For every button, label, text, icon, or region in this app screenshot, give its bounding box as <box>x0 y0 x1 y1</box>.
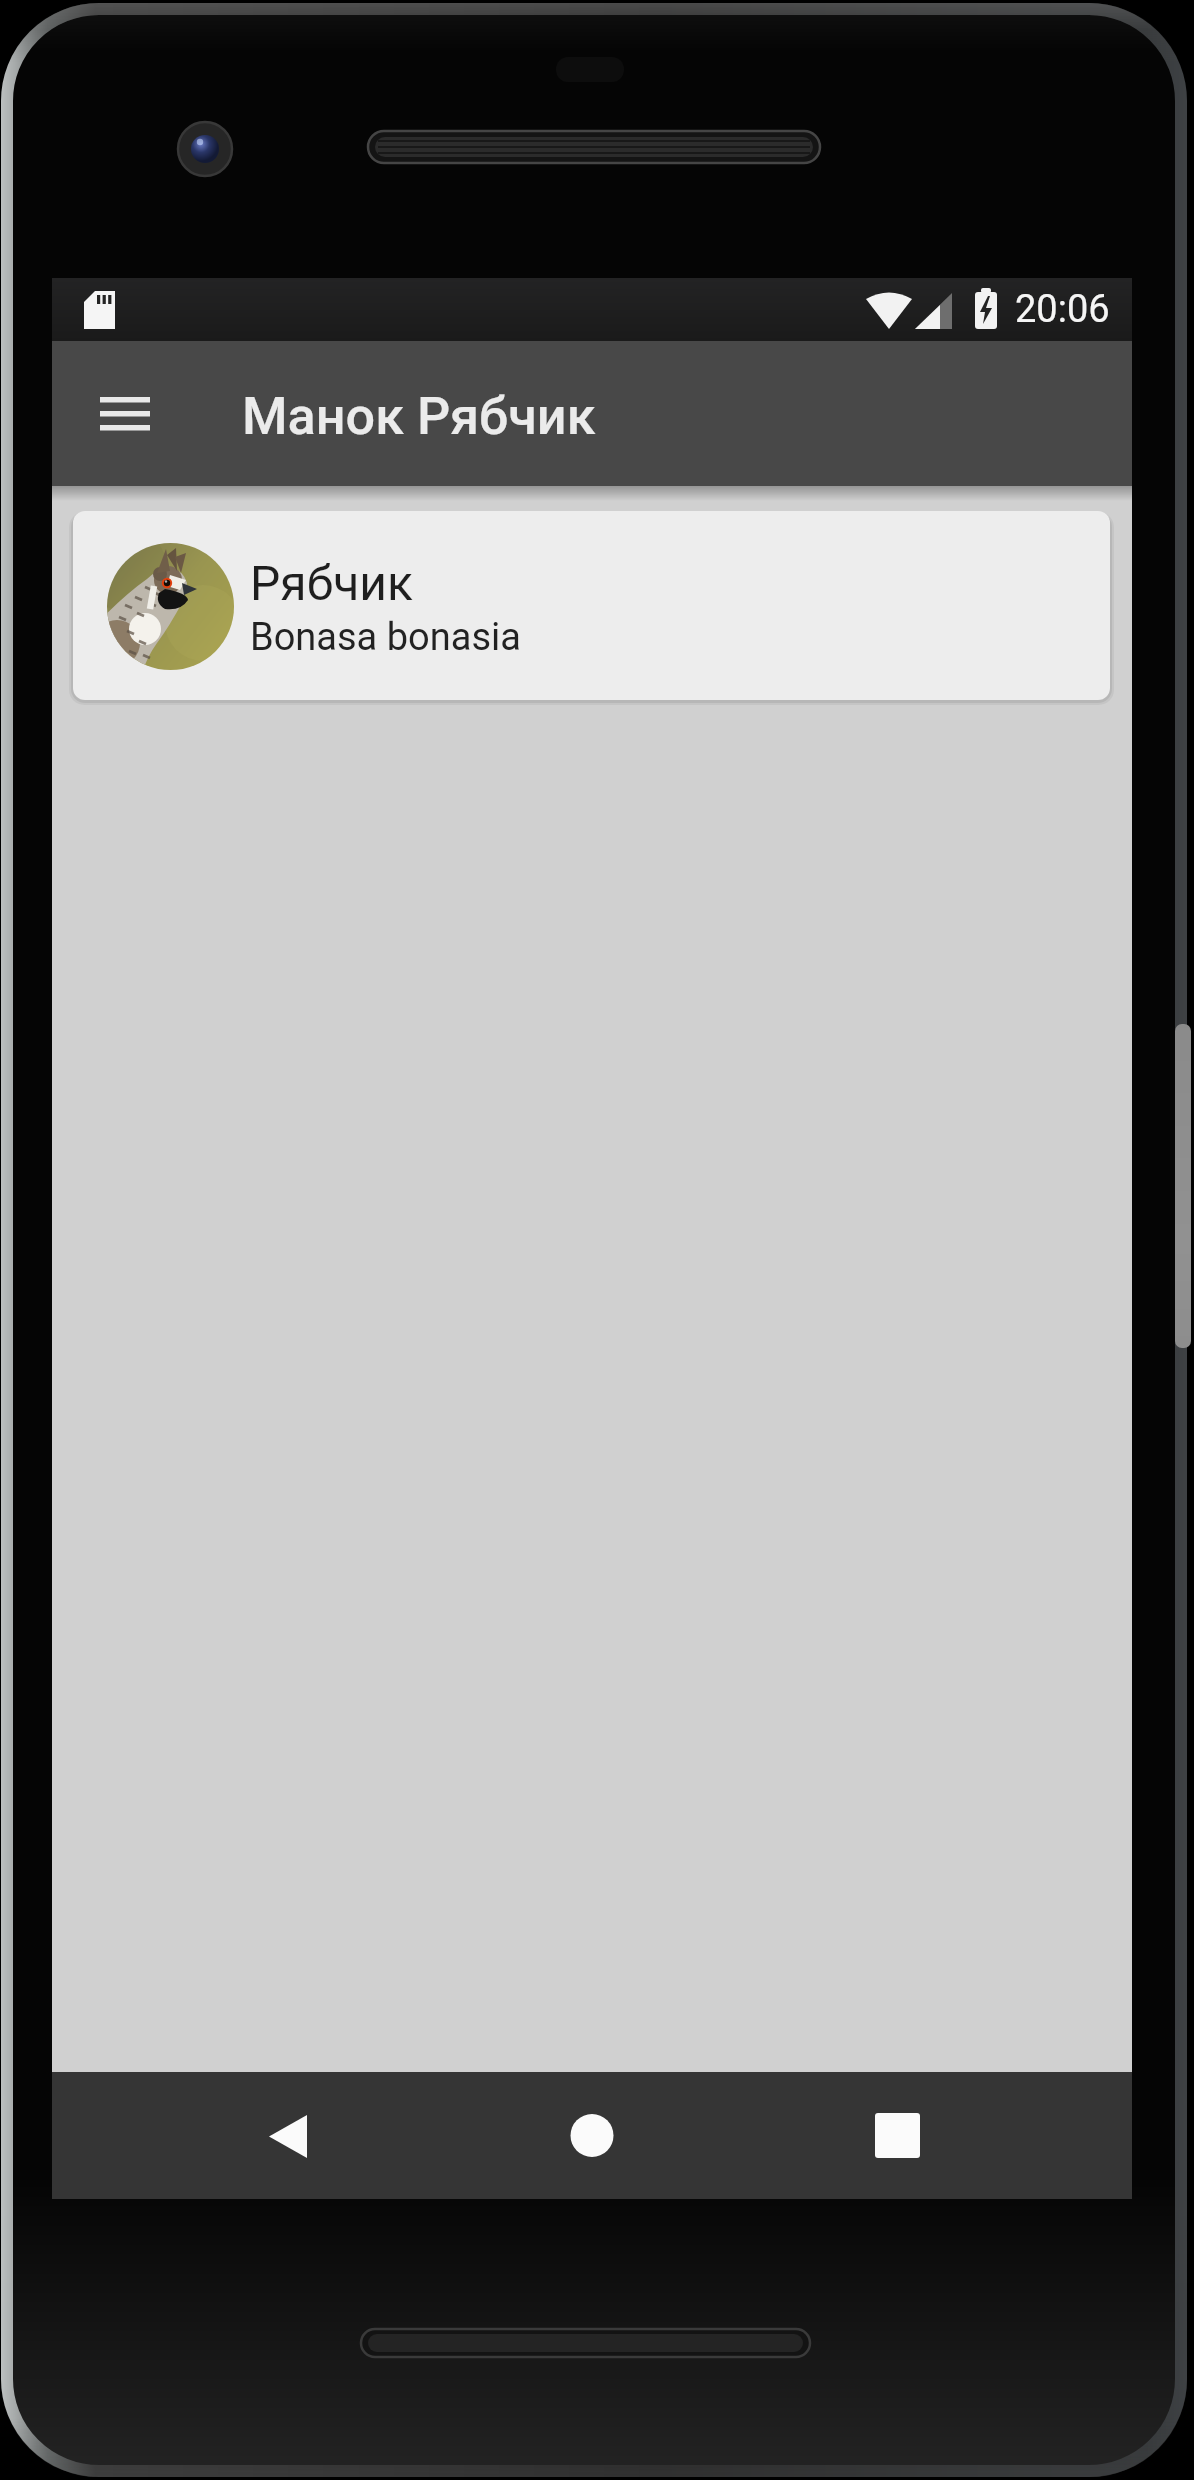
staticText: 20:06 <box>1015 287 1110 332</box>
staticText: Рябчик <box>250 555 413 611</box>
button[interactable] <box>208 2072 335 2199</box>
button[interactable] <box>529 2072 656 2199</box>
button[interactable] <box>76 365 174 463</box>
staticText: Манок Рябчик <box>242 386 596 447</box>
staticText: Bonasa bonasia <box>250 615 521 660</box>
button[interactable]: Рябчик <box>73 511 1110 700</box>
button[interactable] <box>834 2072 961 2199</box>
